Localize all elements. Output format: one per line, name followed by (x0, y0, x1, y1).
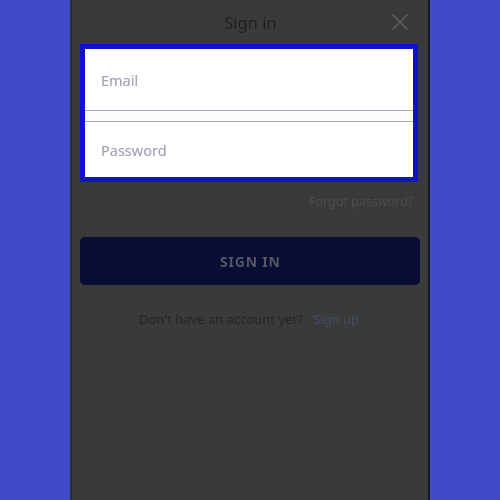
staticText: Sign in (224, 11, 277, 33)
button[interactable]: Close (382, 4, 418, 40)
staticText: Don't have an account yet? (139, 310, 303, 328)
staticText: Email (101, 70, 139, 90)
staticText: Password (101, 140, 167, 160)
button[interactable]: Sign up (311, 308, 361, 330)
staticText: Forgot password? (309, 193, 414, 210)
button[interactable]: SIGN IN (80, 237, 420, 285)
button[interactable]: Forgot password? (307, 191, 416, 212)
button[interactable]: Password (85, 122, 413, 177)
staticText: Sign up (313, 310, 359, 328)
button[interactable]: Email (85, 49, 413, 110)
staticText: SIGN IN (220, 252, 281, 271)
